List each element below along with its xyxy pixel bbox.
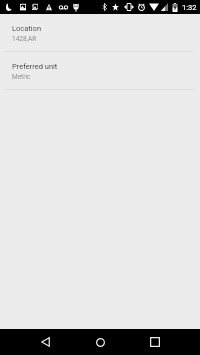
staticText: Preferred unit [12, 62, 58, 71]
staticText: Location [12, 24, 42, 33]
staticText: 1:32 [182, 3, 197, 12]
button[interactable]: Preferred unit [0, 52, 200, 89]
staticText: Metric [12, 73, 31, 81]
button[interactable]: Home [78, 329, 122, 355]
button[interactable]: Recent apps [133, 329, 177, 355]
button[interactable]: Back [23, 329, 67, 355]
button[interactable]: Location [0, 14, 200, 51]
staticText: 1428,AR [12, 35, 37, 43]
